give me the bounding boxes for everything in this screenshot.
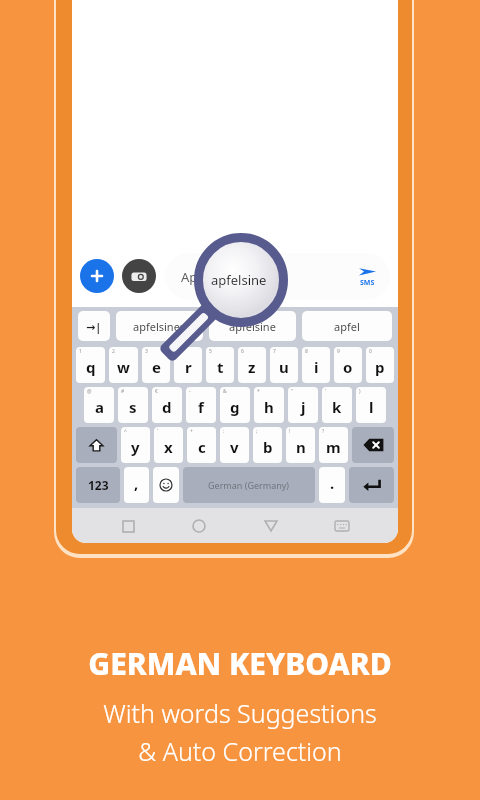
button[interactable]: →| (78, 311, 110, 341)
staticText: ) (359, 388, 361, 395)
button[interactable]: Home (183, 510, 215, 542)
button[interactable]: * (254, 387, 284, 423)
button[interactable]: 8 (302, 347, 330, 383)
staticText: * (257, 388, 260, 395)
button[interactable]: Backspace (352, 427, 394, 463)
button[interactable]: ! (286, 427, 315, 463)
staticText: m (326, 437, 341, 457)
staticText: apfel (334, 319, 360, 334)
button[interactable]: ` (154, 427, 183, 463)
staticText: l (369, 397, 374, 417)
button[interactable]: " (288, 387, 318, 423)
button[interactable]: & (220, 387, 250, 423)
staticText: c (198, 437, 206, 457)
staticText: ; (256, 428, 258, 435)
button[interactable]: Emoji (153, 467, 179, 503)
staticText: j (301, 397, 306, 417)
button[interactable]: 3 (142, 347, 170, 383)
button[interactable]: , (124, 467, 149, 503)
button[interactable]: apfelsine (209, 311, 296, 341)
staticText: ! (289, 428, 291, 435)
staticText: b (263, 437, 273, 457)
button[interactable]: Keyboard (326, 510, 358, 542)
staticText: 3 (145, 348, 148, 355)
staticText: k (332, 397, 342, 417)
staticText: apfelsine (211, 271, 267, 289)
button[interactable]: 2 (109, 347, 138, 383)
button[interactable]: + (187, 427, 216, 463)
staticText: y (131, 437, 140, 457)
staticText: o (343, 357, 353, 377)
staticText: 9 (337, 348, 340, 355)
staticText: apfelsine (229, 319, 276, 334)
staticText: x (164, 437, 173, 457)
button[interactable]: Back (255, 510, 287, 542)
button[interactable]: apfelsinen (116, 311, 203, 341)
staticText: a (95, 397, 104, 417)
staticText: ^ (124, 428, 127, 435)
button[interactable]: Camera (122, 259, 156, 293)
button[interactable]: 9 (334, 347, 362, 383)
button[interactable]: 1 (76, 347, 105, 383)
button[interactable]: 6 (238, 347, 266, 383)
staticText: & Auto Correction (138, 734, 342, 768)
staticText: v (230, 437, 239, 457)
button[interactable]: 4 (174, 347, 202, 383)
button[interactable]: ) (356, 387, 386, 423)
staticText: u (279, 357, 289, 377)
staticText: r (185, 357, 192, 377)
button[interactable]: Add attachment (80, 259, 114, 293)
button[interactable]: : (220, 427, 249, 463)
staticText: 5 (209, 348, 212, 355)
button[interactable]: ? (319, 427, 348, 463)
button[interactable]: ; (253, 427, 282, 463)
staticText: ? (322, 428, 325, 435)
button[interactable]: German (Germany) (183, 467, 315, 503)
staticText: . (330, 473, 335, 493)
button[interactable]: ' (322, 387, 352, 423)
button[interactable]: - (186, 387, 216, 423)
staticText: apfelsinen (133, 319, 187, 334)
button[interactable]: Shift (76, 427, 117, 463)
staticText: p (375, 357, 385, 377)
staticText: n (296, 437, 306, 457)
staticText: t (217, 357, 224, 377)
staticText: 123 (88, 477, 109, 493)
staticText: , (134, 473, 139, 493)
button[interactable]: Recents (112, 510, 144, 542)
staticText: German (Germany) (208, 479, 290, 491)
staticText: e (152, 357, 161, 377)
staticText: With words Suggestions (103, 696, 377, 730)
button[interactable]: . (319, 467, 345, 503)
button[interactable]: @ (84, 387, 114, 423)
staticText: q (86, 357, 96, 377)
button[interactable]: € (152, 387, 182, 423)
button[interactable]: 5 (206, 347, 234, 383)
button[interactable]: # (118, 387, 148, 423)
staticText: 6 (241, 348, 244, 355)
staticText: →| (86, 319, 102, 334)
staticText: ` (157, 428, 159, 435)
button[interactable]: apfel (302, 311, 392, 341)
staticText: ' (325, 388, 327, 395)
staticText: 2 (112, 348, 115, 355)
button[interactable]: Apf (165, 253, 390, 300)
staticText: Apf (181, 268, 202, 286)
staticText: 8 (305, 348, 308, 355)
staticText: GERMAN KEYBOARD (88, 643, 392, 684)
button[interactable]: ^ (121, 427, 150, 463)
staticText: € (155, 388, 158, 395)
staticText: : (223, 428, 225, 435)
staticText: 1 (79, 348, 82, 355)
staticText: g (230, 397, 240, 417)
button[interactable]: Enter (349, 467, 394, 503)
staticText: 7 (273, 348, 276, 355)
staticText: f (198, 397, 204, 417)
button[interactable]: 0 (366, 347, 394, 383)
staticText: 0 (369, 348, 372, 355)
button[interactable]: 7 (270, 347, 298, 383)
button[interactable]: 123 (76, 467, 120, 503)
staticText: & (223, 388, 227, 395)
staticText: s (129, 397, 137, 417)
staticText: i (314, 357, 319, 377)
